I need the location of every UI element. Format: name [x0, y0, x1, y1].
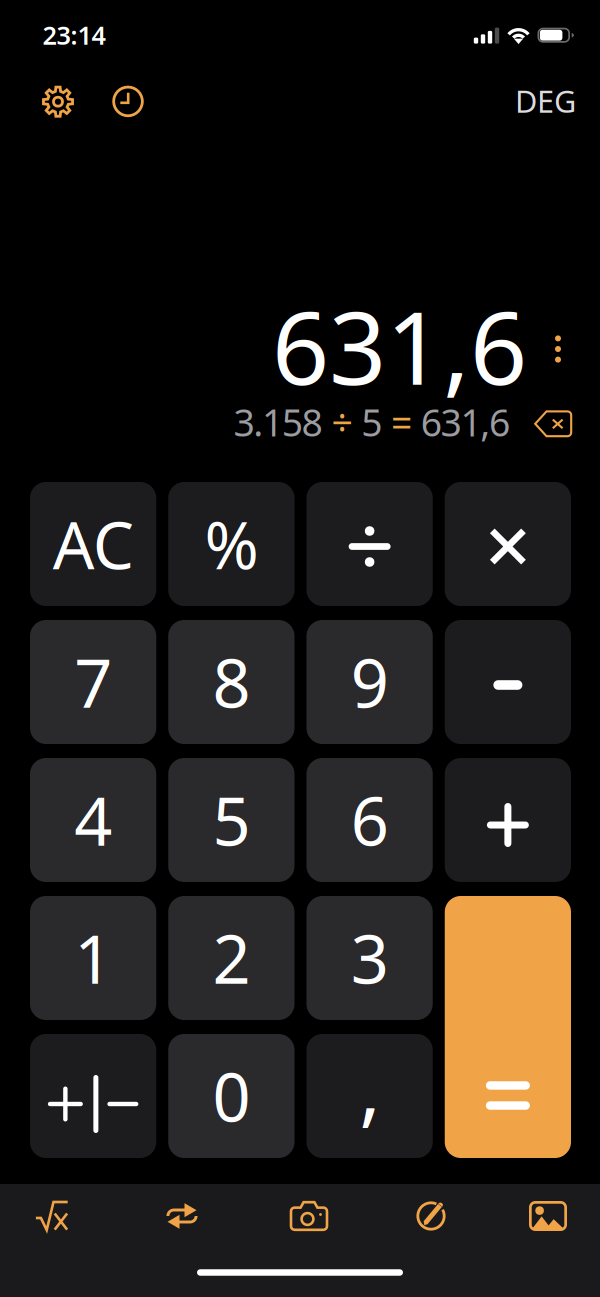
button[interactable]: AC [30, 482, 156, 606]
button[interactable]: 8 [168, 620, 294, 744]
button[interactable]: Convert units [136, 1184, 228, 1248]
button[interactable]: % [168, 482, 294, 606]
button[interactable]: 4 [30, 758, 156, 882]
button[interactable]: History [102, 75, 154, 127]
staticText: DEG [515, 80, 576, 121]
button[interactable]: Camera [263, 1184, 355, 1248]
staticText: 5 [212, 776, 250, 864]
button[interactable]: 0 [168, 1034, 294, 1158]
staticText: 8 [212, 638, 250, 726]
staticText: % [204, 501, 258, 587]
staticText: 23:14 [42, 18, 105, 52]
staticText: 2 [212, 914, 250, 1002]
button[interactable]: More options [538, 320, 578, 378]
staticText: ÷ [323, 397, 361, 447]
staticText: 631,6 [272, 280, 527, 412]
staticText: 7 [74, 638, 112, 726]
button[interactable]: Photos [502, 1184, 594, 1248]
staticText: 3 [351, 914, 389, 1002]
button[interactable]: Plus [445, 758, 571, 882]
button[interactable]: DEG [508, 77, 582, 125]
button[interactable]: 2 [168, 896, 294, 1020]
staticText: AC [53, 501, 134, 587]
staticText: = [382, 397, 421, 447]
button[interactable]: 9 [306, 620, 433, 744]
button[interactable]: Draw [386, 1184, 478, 1248]
staticText: 6 [351, 776, 389, 864]
staticText: , [359, 1034, 380, 1140]
staticText: 5 [361, 397, 382, 447]
button[interactable]: Plus minus toggle [30, 1034, 156, 1158]
button[interactable]: , [306, 1034, 433, 1158]
button[interactable]: Settings [32, 76, 84, 128]
button[interactable]: Divide [306, 482, 433, 606]
staticText: 0 [212, 1052, 250, 1140]
button[interactable]: 3 [306, 896, 433, 1020]
button[interactable]: 5 [168, 758, 294, 882]
button[interactable]: 6 [306, 758, 433, 882]
button[interactable]: 7 [30, 620, 156, 744]
button[interactable]: Multiply [445, 482, 571, 606]
staticText: 631,6 [421, 397, 510, 447]
button[interactable]: 1 [30, 896, 156, 1020]
staticText: 4 [74, 776, 112, 864]
button[interactable]: Minus [445, 620, 571, 744]
button[interactable]: Delete [527, 402, 579, 446]
staticText: 3.158 [233, 397, 323, 447]
staticText: 1 [74, 914, 112, 1002]
staticText: 9 [351, 638, 389, 726]
button[interactable]: Equals [445, 896, 571, 1158]
button[interactable]: Square root [6, 1184, 98, 1248]
